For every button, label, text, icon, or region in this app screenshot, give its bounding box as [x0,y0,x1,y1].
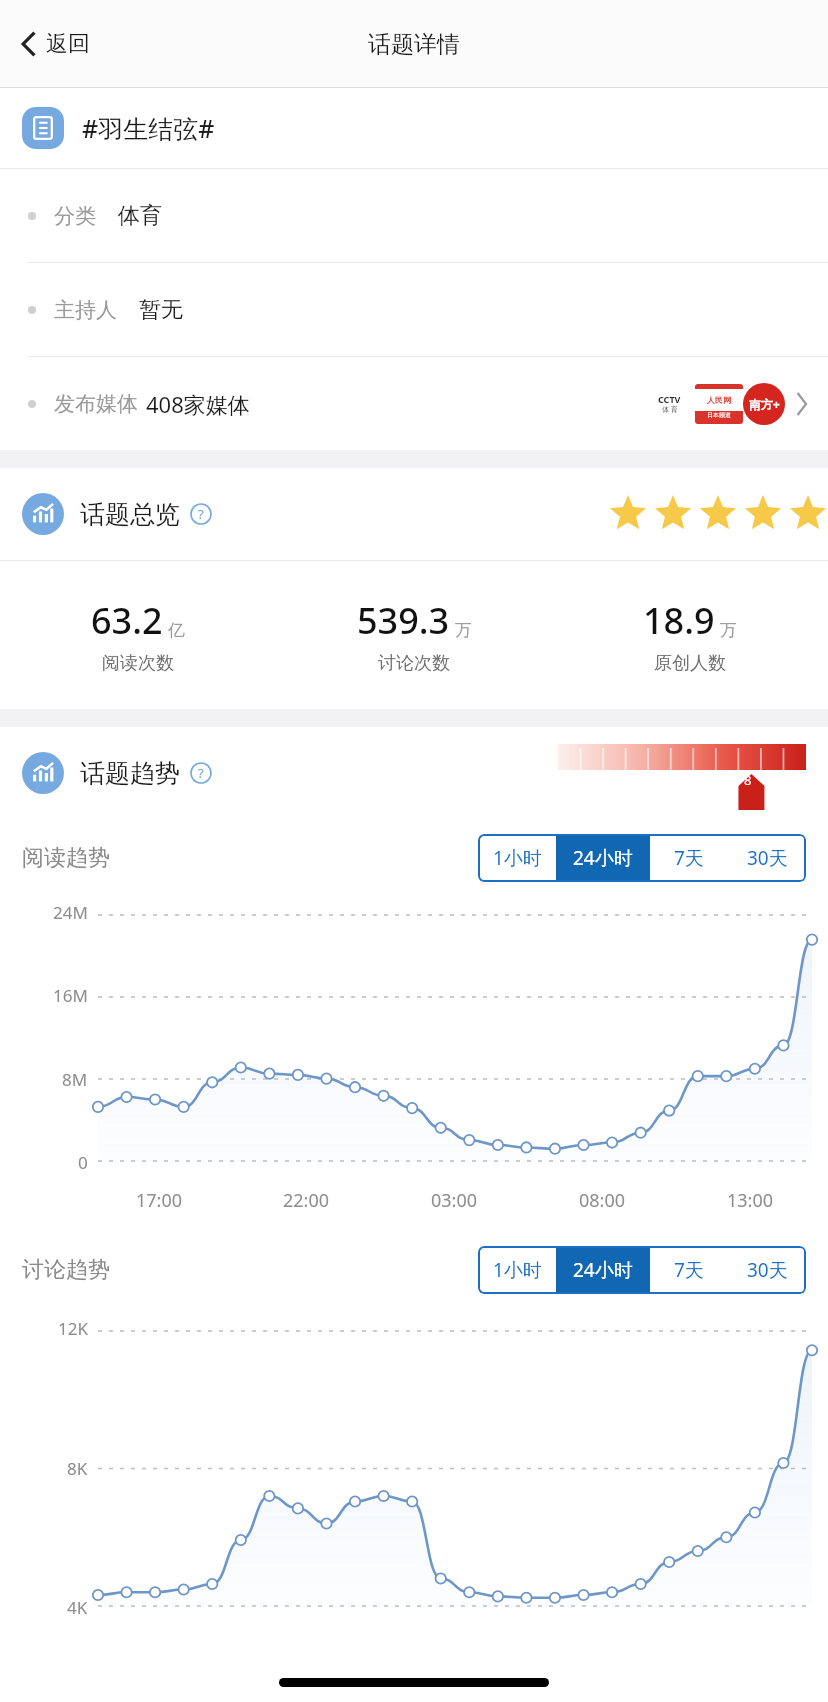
staticText: 03:00 [431,1188,478,1213]
button[interactable]: 返回 [14,23,96,65]
button[interactable]: 7天 [650,834,728,882]
staticText: 日本频道 [707,411,731,419]
staticText: 原创人数 [654,652,726,675]
staticText: 讨论趋势 [22,1256,110,1284]
staticText: 人民网 [707,395,731,405]
staticText: 08:00 [579,1188,626,1213]
staticText: 体育 [118,202,162,230]
staticText: 返回 [46,30,90,58]
staticText: 7天 [674,845,704,871]
staticText: 1小时 [493,1257,542,1283]
staticText: 63.2 [91,596,163,645]
button[interactable]: 30天 [728,1246,806,1294]
staticText: 分类 [54,203,96,229]
staticText: 阅读趋势 [22,844,110,872]
staticText: 1小时 [493,845,542,871]
button[interactable]: 24小时 [556,834,650,882]
button[interactable]: #羽生结弦# [0,88,828,168]
staticText: 408家媒体 [146,389,250,419]
button[interactable]: 话题总览 [0,468,828,560]
staticText: ? [198,764,204,782]
staticText: 发布媒体 [54,391,138,417]
staticText: 18.9 [643,596,715,645]
staticText: 13:00 [727,1188,774,1213]
staticText: 24小时 [573,1257,633,1283]
staticText: ? [198,505,204,523]
staticText: 南方+ [749,396,780,412]
button[interactable]: 话题趋势 [0,727,828,819]
staticText: 24M [53,901,88,919]
staticText: 22:00 [283,1188,330,1213]
staticText: 8K [67,1457,88,1475]
staticText: 8M [62,1068,88,1086]
button[interactable]: 主持人 [0,263,828,356]
staticText: 话题总览 [80,499,180,530]
staticText: 12K [58,1317,88,1335]
button[interactable]: 7天 [650,1246,728,1294]
staticText: 暂无 [139,296,183,324]
staticText: 万 [720,620,737,641]
button[interactable]: 1小时 [478,834,556,882]
staticText: 亿 [168,620,185,641]
staticText: #羽生结弦# [82,111,215,145]
staticText: 4K [67,1596,88,1614]
staticText: 话题详情 [368,30,460,59]
staticText: 539.3 [357,596,450,645]
other: 热度 [558,744,806,802]
staticText: 17:00 [136,1188,183,1213]
staticText: 话题趋势 [80,758,180,789]
staticText: 0 [78,1151,88,1169]
staticText: 主持人 [54,297,117,323]
button[interactable]: 分类 [0,169,828,262]
staticText: 24小时 [573,845,633,871]
staticText: CCTV [658,393,681,405]
staticText: 8 [744,771,752,789]
staticText: 讨论次数 [378,652,450,675]
staticText: 阅读次数 [102,652,174,675]
button[interactable]: 30天 [728,834,806,882]
staticText: 万 [455,620,472,641]
staticText: 体 育 [662,405,678,415]
button[interactable]: 24小时 [556,1246,650,1294]
button[interactable]: 发布媒体 [0,357,828,450]
staticText: 16M [53,984,88,1002]
button[interactable]: 1小时 [478,1246,556,1294]
staticText: 30天 [747,845,788,871]
staticText: 7天 [674,1257,704,1283]
staticText: 30天 [747,1257,788,1283]
